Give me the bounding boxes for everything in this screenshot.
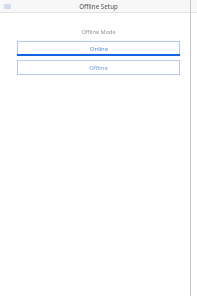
staticText: Offline [89,64,108,72]
staticText: Offline Setup [79,2,118,10]
button[interactable]: Offline [17,60,180,75]
button[interactable]: Menu [3,3,11,10]
staticText: Online [90,45,108,53]
button[interactable]: Online [17,41,180,56]
staticText: Offline Mode [0,28,197,36]
